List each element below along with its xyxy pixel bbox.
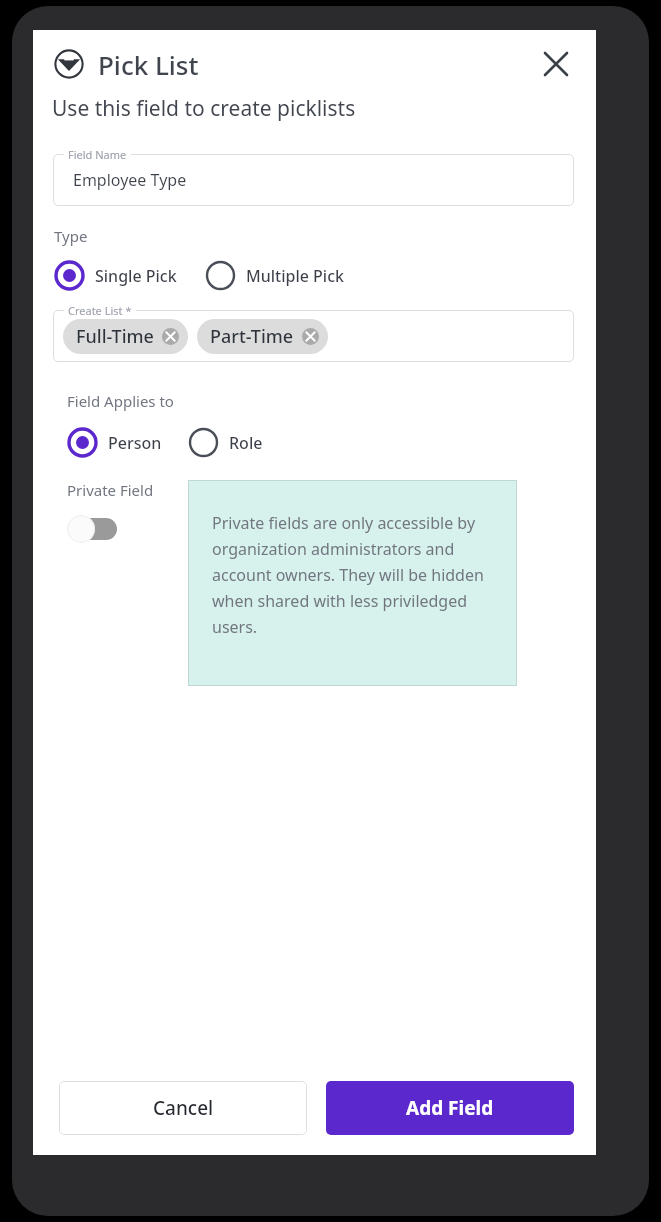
- staticText: Multiple Pick: [246, 265, 344, 287]
- button[interactable]: Add Field: [326, 1081, 574, 1135]
- staticText: Part-Time: [210, 324, 294, 349]
- staticText: Person: [108, 432, 162, 454]
- staticText: Employee Type: [73, 169, 187, 191]
- button[interactable]: Person: [67, 427, 162, 458]
- button[interactable]: Close: [536, 44, 576, 84]
- button[interactable]: Full-Time: [63, 319, 188, 354]
- staticText: Use this field to create picklists: [52, 94, 356, 123]
- staticText: Private fields are only accessible by or…: [212, 512, 495, 638]
- staticText: Private Field: [67, 480, 154, 500]
- staticText: Single Pick: [95, 265, 177, 287]
- button[interactable]: Employee Type: [53, 154, 574, 206]
- other: Remove Full-Time: [162, 328, 179, 345]
- staticText: Full-Time: [76, 324, 154, 349]
- button[interactable]: Pick list type: [52, 47, 86, 81]
- staticText: Pick List: [98, 47, 199, 82]
- staticText: Type: [54, 226, 88, 246]
- button[interactable]: Private field toggle: [67, 514, 125, 544]
- staticText: Cancel: [153, 1095, 214, 1121]
- button[interactable]: Full-Time: [53, 310, 574, 362]
- staticText: Add Field: [406, 1095, 494, 1121]
- staticText: Field Applies to: [67, 391, 174, 411]
- button[interactable]: Role: [188, 427, 263, 458]
- staticText: Create List *: [68, 303, 132, 318]
- button[interactable]: Single Pick: [54, 260, 177, 291]
- button[interactable]: Cancel: [59, 1081, 307, 1135]
- other: Remove Part-Time: [302, 328, 319, 345]
- button[interactable]: Multiple Pick: [205, 260, 344, 291]
- staticText: Role: [229, 432, 263, 454]
- staticText: Field Name: [68, 147, 127, 162]
- button[interactable]: Part-Time: [197, 319, 328, 354]
